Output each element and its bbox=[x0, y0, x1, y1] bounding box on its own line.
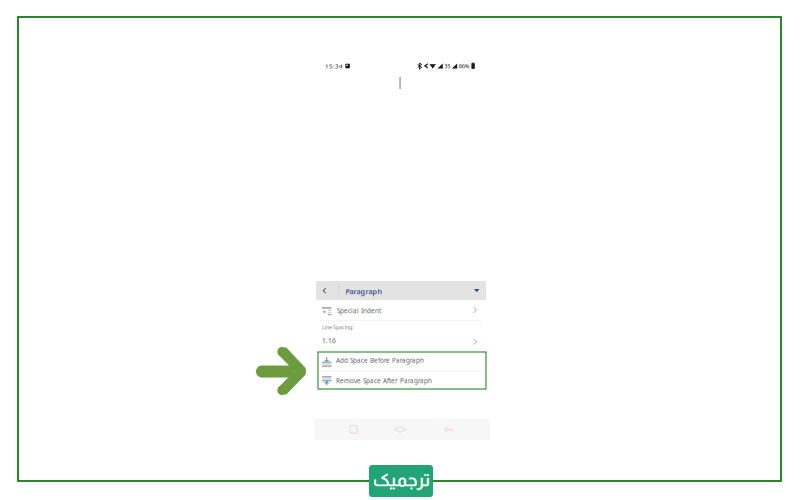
button[interactable]: Remove Space After Paragraph bbox=[318, 371, 486, 389]
staticText: Special Indent bbox=[337, 307, 381, 315]
staticText: 1.16 bbox=[322, 336, 336, 345]
staticText: 35 bbox=[444, 62, 450, 70]
staticText: Remove Space After Paragraph bbox=[336, 376, 432, 385]
button[interactable]: Recents bbox=[340, 419, 366, 440]
button[interactable]: Back bbox=[316, 281, 338, 300]
button[interactable]: Special Indent bbox=[316, 300, 486, 320]
staticText: Add Space Before Paragraph bbox=[336, 356, 424, 365]
staticText: 15:34 bbox=[325, 62, 343, 70]
staticText: Paragraph bbox=[345, 287, 382, 296]
button[interactable]: Add Space Before Paragraph bbox=[318, 352, 486, 371]
staticText: ترجمیک bbox=[372, 470, 430, 490]
button[interactable]: Home bbox=[387, 419, 413, 440]
staticText: Line Spacing: bbox=[322, 323, 353, 331]
staticText: 86% bbox=[459, 62, 470, 70]
button[interactable]: Collapse bbox=[468, 281, 486, 300]
button[interactable]: Back bbox=[435, 419, 461, 440]
button[interactable]: 1.16 bbox=[316, 334, 486, 350]
